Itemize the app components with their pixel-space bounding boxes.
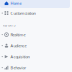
- button[interactable]: Customization: [0, 9, 70, 17]
- button[interactable]: Behavior: [0, 64, 70, 72]
- staticText: Behavior: [10, 65, 26, 70]
- staticText: Home: [10, 1, 21, 6]
- staticText: Audience: [10, 43, 26, 48]
- button[interactable]: Audience: [0, 42, 70, 50]
- staticText: Realtime: [10, 32, 25, 37]
- staticText: Customization: [10, 10, 35, 16]
- button[interactable]: Acquisition: [0, 53, 70, 61]
- staticText: REPORTS: [3, 24, 15, 27]
- button[interactable]: Home: [0, 0, 70, 8]
- staticText: Acquisition: [10, 54, 29, 59]
- button[interactable]: Realtime: [0, 31, 70, 39]
